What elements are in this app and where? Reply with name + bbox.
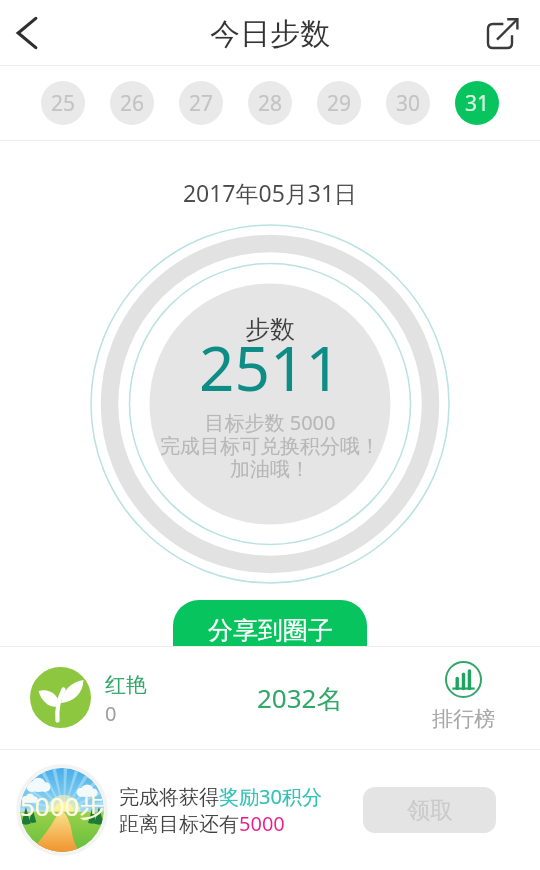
staticText: 完成将获得奖励30积分: [119, 783, 322, 810]
button[interactable]: 分享到圈子: [173, 600, 367, 678]
staticText: 分享到圈子: [208, 615, 333, 646]
button[interactable]: 26: [110, 81, 154, 125]
button[interactable]: 29: [317, 81, 361, 125]
button[interactable]: 27: [179, 81, 223, 125]
button[interactable]: 排行榜: [432, 661, 495, 732]
staticText: 2511: [199, 325, 341, 409]
staticText: 距离目标还有5000: [119, 810, 285, 837]
button[interactable]: 领取: [363, 787, 496, 833]
staticText: 红艳: [105, 672, 147, 698]
staticText: 排行榜: [432, 706, 495, 732]
staticText: 29: [327, 89, 352, 118]
staticText: 5000步: [20, 788, 104, 824]
staticText: 2017年05月31日: [0, 177, 540, 208]
button[interactable]: Back: [0, 0, 54, 66]
staticText: 31: [465, 89, 490, 118]
button[interactable]: 30: [386, 81, 430, 125]
staticText: 30: [396, 89, 421, 118]
staticText: 28: [258, 89, 283, 118]
staticText: 2032名: [257, 680, 343, 716]
staticText: 27: [189, 89, 214, 118]
button[interactable]: Share: [480, 0, 540, 66]
staticText: 目标步数 5000 完成目标可兑换积分哦！ 加油哦！: [0, 409, 540, 482]
staticText: 今日步数: [210, 15, 330, 53]
button[interactable]: 31: [455, 81, 499, 125]
staticText: 0: [105, 700, 117, 727]
staticText: 26: [120, 89, 145, 118]
button[interactable]: 28: [248, 81, 292, 125]
staticText: 步数: [245, 314, 295, 345]
staticText: 领取: [407, 796, 453, 825]
button[interactable]: 25: [41, 81, 85, 125]
staticText: 25: [51, 89, 76, 118]
